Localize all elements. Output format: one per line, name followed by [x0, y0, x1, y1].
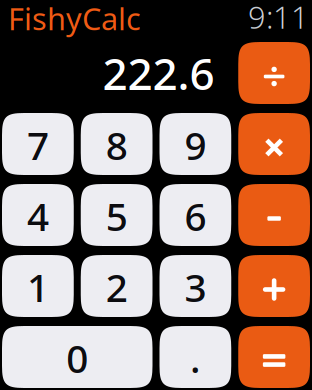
button[interactable]: 0 [2, 326, 152, 388]
button[interactable]: 4 [2, 184, 74, 246]
staticText: FishyCalc [8, 0, 141, 39]
button[interactable]: Equals [238, 326, 310, 388]
button[interactable]: 7 [2, 113, 74, 175]
staticText: 5 [106, 190, 128, 242]
button[interactable]: 8 [81, 113, 153, 175]
staticText: 2 [106, 261, 128, 313]
button[interactable]: Divide [238, 42, 310, 104]
staticText: 8 [106, 119, 128, 171]
button[interactable]: Add [238, 255, 310, 317]
button[interactable]: 9 [159, 113, 231, 175]
button[interactable]: 1 [2, 255, 74, 317]
staticText: . [190, 332, 201, 384]
staticText: 7 [27, 119, 49, 171]
staticText: 9:11 [248, 0, 309, 37]
staticText: 0 [66, 332, 88, 384]
button[interactable]: 3 [159, 255, 231, 317]
button[interactable]: Subtract [238, 184, 310, 246]
staticText: 6 [184, 190, 206, 242]
staticText: 9 [184, 119, 206, 171]
button[interactable]: 2 [81, 255, 153, 317]
button[interactable]: 5 [81, 184, 153, 246]
staticText: 3 [184, 261, 206, 313]
staticText: 1 [27, 261, 49, 313]
button[interactable]: Multiply [238, 113, 310, 175]
button[interactable]: 6 [159, 184, 231, 246]
button[interactable]: . [159, 326, 231, 388]
staticText: 4 [27, 190, 49, 242]
staticText: 222.6 [102, 44, 214, 102]
